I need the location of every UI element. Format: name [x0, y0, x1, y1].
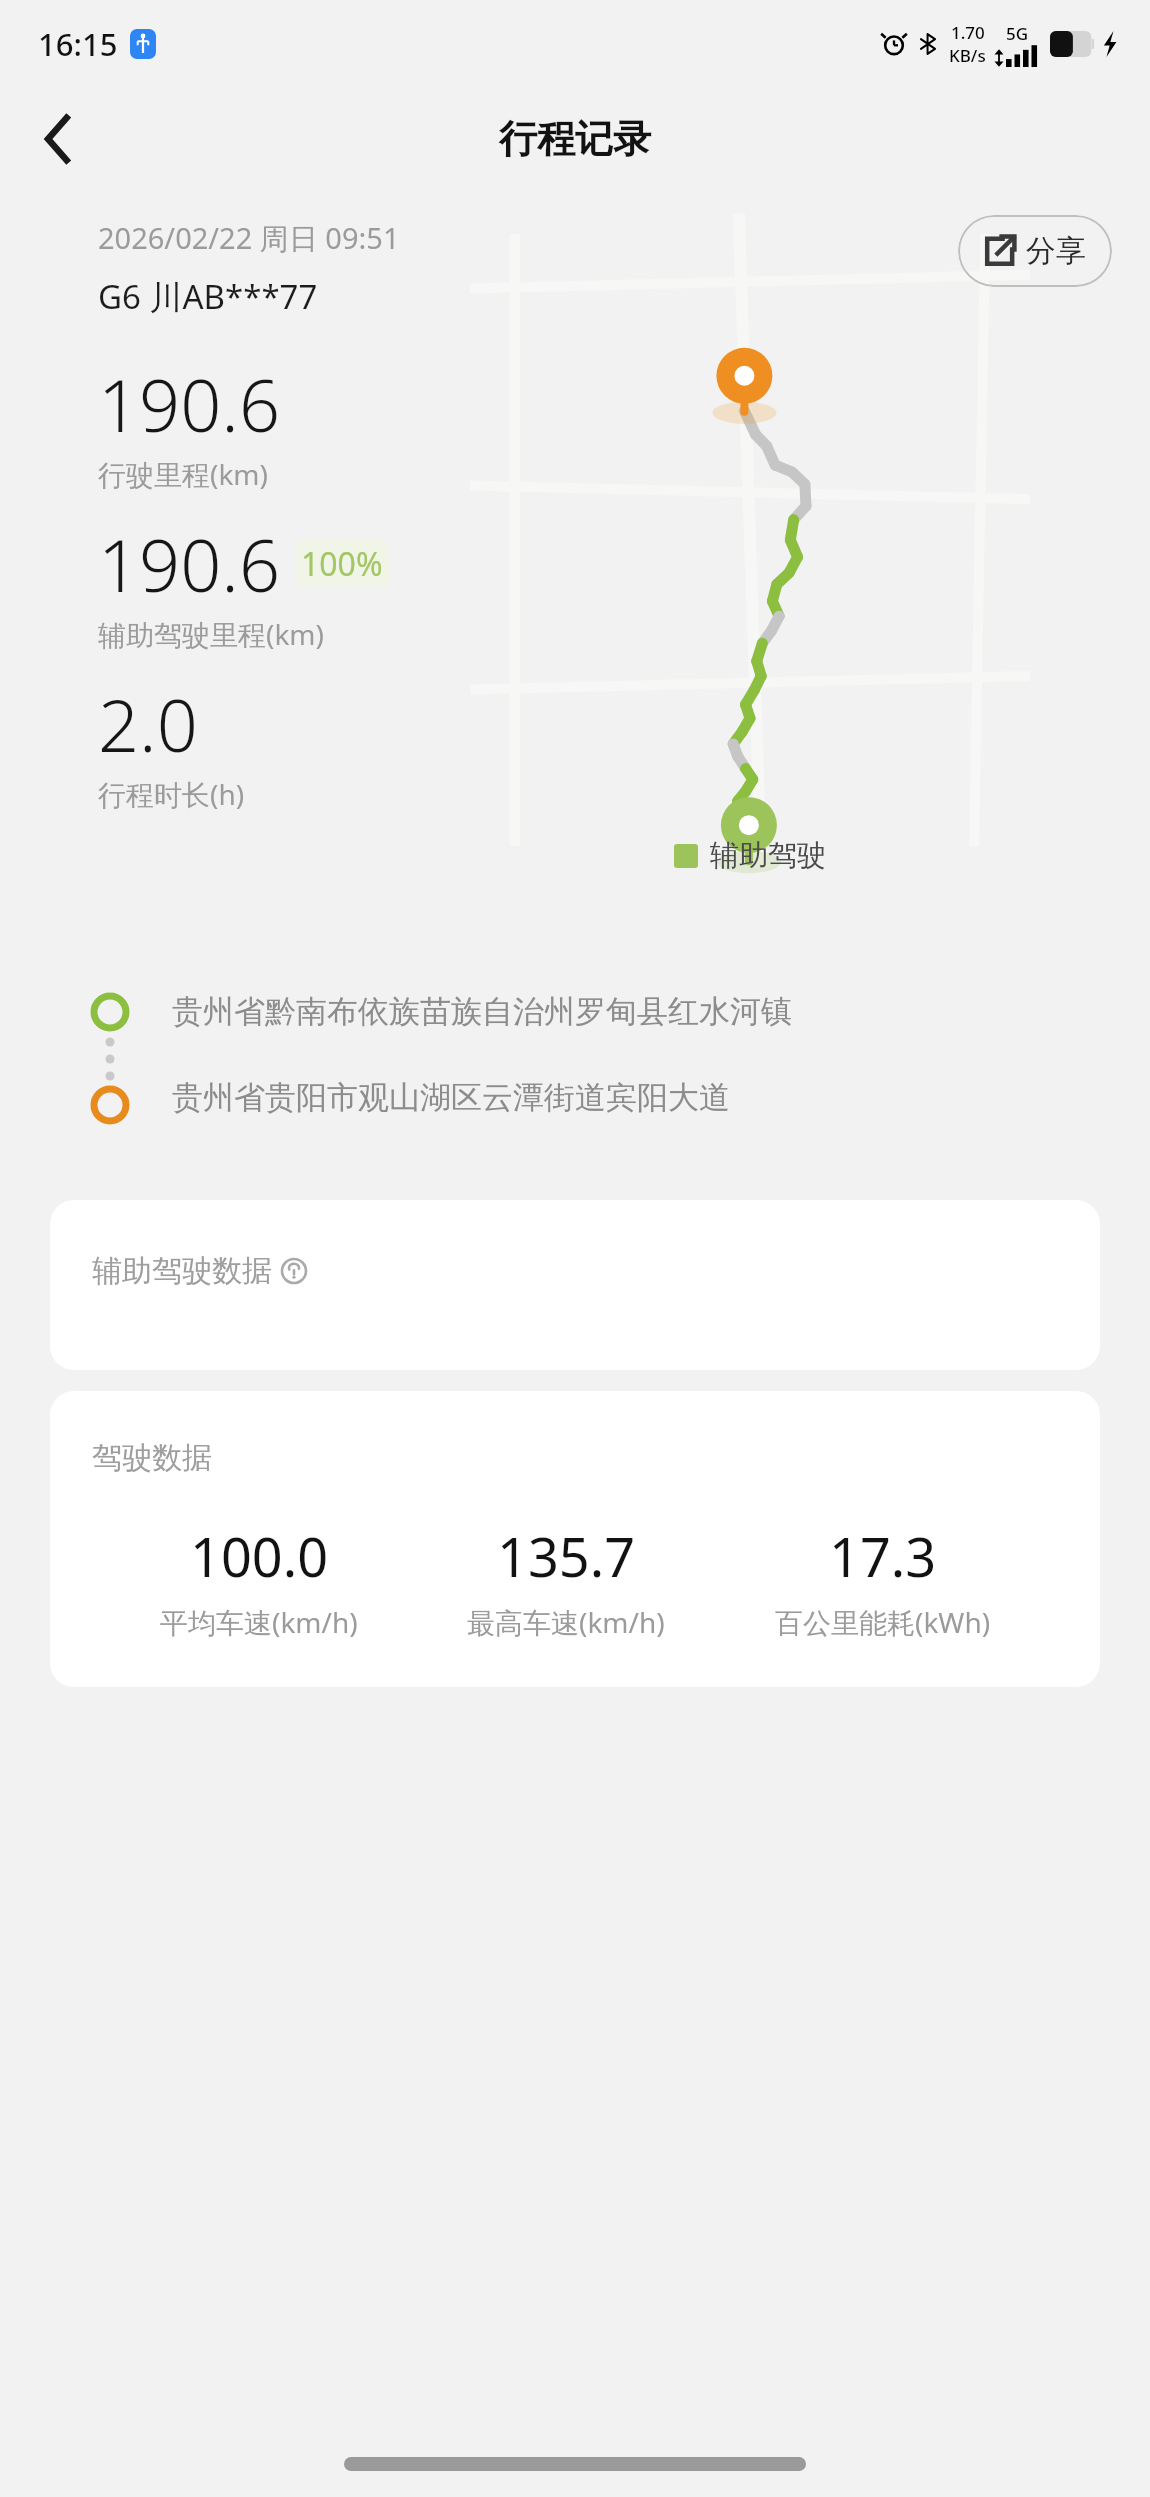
button[interactable]: 辅助驾驶数据: [50, 1200, 1100, 1370]
staticText: 最高车速(km/h): [467, 1603, 665, 1641]
staticText: G6 川AB***77: [98, 274, 318, 319]
staticText: 16:15: [38, 23, 118, 65]
staticText: 行程时长(h): [98, 775, 245, 813]
staticText: 135.7: [497, 1519, 636, 1593]
staticText: 贵州省黔南布依族苗族自治州罗甸县红水河镇: [172, 992, 792, 1031]
staticText: 17.3: [829, 1519, 937, 1593]
staticText: 行程记录: [499, 115, 651, 163]
staticText: 贵州省贵阳市观山湖区云潭街道宾阳大道: [172, 1078, 730, 1117]
staticText: 辅助驾驶数据: [92, 1252, 272, 1290]
button[interactable]: Back: [22, 104, 92, 174]
staticText: 辅助驾驶里程(km): [98, 615, 324, 653]
staticText: 辅助驾驶: [710, 837, 826, 874]
staticText: 行驶里程(km): [98, 455, 268, 493]
staticText: 100.0: [190, 1519, 329, 1593]
staticText: 驾驶数据: [92, 1439, 212, 1477]
staticText: 190.6: [98, 355, 281, 453]
staticText: 1.70: [951, 21, 985, 44]
staticText: 2026/02/22 周日 09:51: [98, 218, 400, 258]
staticText: 190.6: [98, 515, 281, 613]
staticText: KB/s: [949, 44, 986, 67]
staticText: 2.0: [98, 675, 198, 773]
staticText: 分享: [1026, 232, 1086, 270]
staticText: 平均车速(km/h): [160, 1603, 358, 1641]
button[interactable]: 分享: [958, 215, 1112, 287]
button[interactable]: 驾驶数据: [50, 1391, 1100, 1687]
staticText: 5G: [1006, 22, 1029, 45]
staticText: 百公里能耗(kWh): [775, 1603, 991, 1641]
staticText: 100%: [301, 542, 383, 586]
